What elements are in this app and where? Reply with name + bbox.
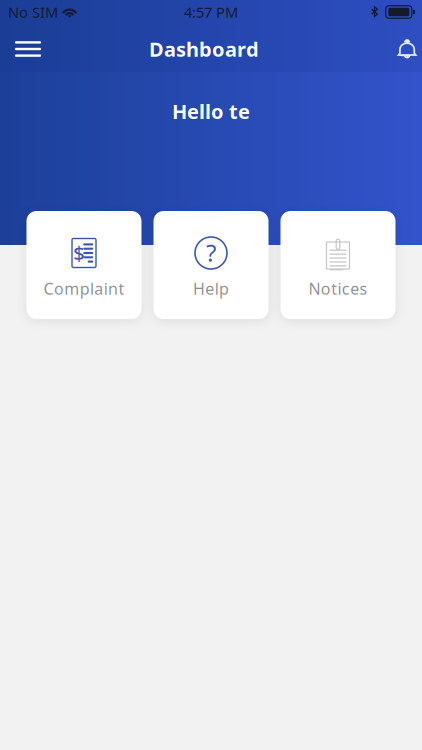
button[interactable]: ? xyxy=(153,211,268,319)
staticText: Dashboard xyxy=(149,36,259,62)
staticText: No SIM xyxy=(8,2,58,22)
staticText: $ xyxy=(73,240,84,266)
staticText: Notices xyxy=(308,278,368,299)
button[interactable]: $ xyxy=(26,211,141,319)
staticText: Hello te xyxy=(172,98,250,125)
staticText: ? xyxy=(206,237,216,268)
button[interactable]: Menu xyxy=(7,26,49,72)
staticText: Help xyxy=(193,278,229,299)
button[interactable]: Notices xyxy=(280,211,395,319)
staticText: 4:57 PM xyxy=(184,2,238,22)
staticText: Complaint xyxy=(44,278,124,299)
button[interactable]: Notifications xyxy=(393,26,421,72)
